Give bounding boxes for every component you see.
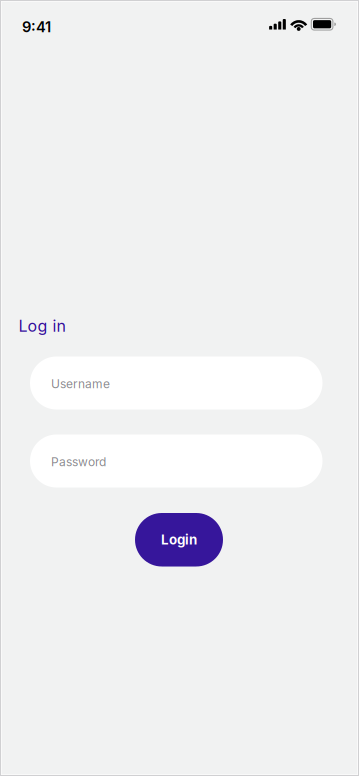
staticText: Password: [51, 455, 106, 469]
button[interactable]: Password: [30, 434, 322, 487]
button[interactable]: Login: [135, 513, 223, 566]
staticText: Username: [51, 377, 110, 391]
staticText: Login: [161, 532, 197, 548]
button[interactable]: Username: [30, 356, 322, 409]
staticText: 9:41: [22, 18, 51, 36]
staticText: Log in: [18, 316, 65, 336]
